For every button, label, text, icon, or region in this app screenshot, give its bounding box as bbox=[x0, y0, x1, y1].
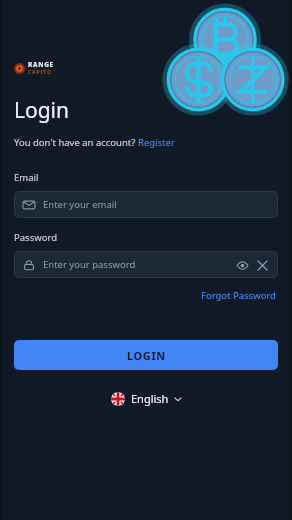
staticText: Register bbox=[138, 136, 175, 149]
button[interactable]: Enter your password bbox=[14, 251, 278, 278]
staticText: English bbox=[131, 391, 169, 406]
staticText: You don't have an account? bbox=[14, 136, 138, 149]
button[interactable]: Register bbox=[138, 136, 175, 149]
button[interactable]: LOGIN bbox=[14, 340, 278, 370]
staticText: CAPITO bbox=[28, 69, 52, 76]
staticText: Password bbox=[14, 231, 57, 244]
button[interactable]: Enter your email bbox=[14, 191, 278, 218]
button[interactable]: Show password bbox=[235, 258, 249, 272]
button[interactable]: Forgot Password bbox=[199, 287, 278, 304]
staticText: Login bbox=[14, 96, 70, 125]
button[interactable]: English bbox=[105, 387, 188, 410]
staticText: RANGE bbox=[28, 60, 54, 69]
staticText: Forgot Password bbox=[201, 289, 276, 302]
button[interactable]: Clear password bbox=[255, 258, 269, 272]
staticText: Enter your email bbox=[43, 198, 117, 211]
staticText: LOGIN bbox=[127, 348, 166, 363]
staticText: Email bbox=[14, 171, 39, 184]
staticText: Enter your password bbox=[43, 258, 136, 271]
